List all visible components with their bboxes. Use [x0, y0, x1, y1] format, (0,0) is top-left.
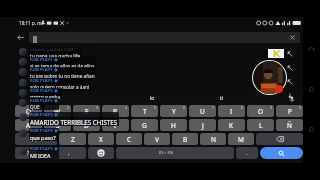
- staticText: MI IDEA: [30, 152, 51, 159]
- button[interactable]: Camera preview: [253, 61, 286, 94]
- button[interactable]: E: [73, 105, 100, 117]
- button[interactable]: usuario perdido 9348: [19, 47, 82, 60]
- button[interactable]: G: [131, 119, 158, 131]
- button[interactable]: Period: [236, 147, 258, 159]
- staticText: 7: [212, 105, 215, 110]
- button[interactable]: X: [88, 133, 114, 145]
- button[interactable]: J: [189, 119, 216, 131]
- button[interactable]: Voice input: [285, 92, 299, 105]
- staticText: 18:11 p. m.: [19, 20, 43, 26]
- button[interactable]: F: [102, 119, 129, 131]
- button[interactable]: ROB PLAYS: [19, 78, 91, 90]
- button[interactable]: B: [172, 133, 198, 145]
- button[interactable]: V: [144, 133, 170, 145]
- staticText: U: [200, 107, 205, 116]
- button[interactable]: O: [247, 105, 274, 117]
- staticText: H: [171, 121, 176, 130]
- staticText: Q: [26, 107, 32, 116]
- button[interactable]: T: [131, 105, 158, 117]
- button[interactable]: Comma: [51, 147, 86, 159]
- staticText: ti: [220, 95, 224, 102]
- staticText: 6: [183, 105, 186, 110]
- staticText: C: [127, 135, 132, 144]
- button[interactable]: ROB PLAYS: [19, 128, 59, 141]
- button[interactable]: D: [73, 119, 100, 131]
- button[interactable]: ROB PLAYS: [19, 112, 119, 126]
- button[interactable]: ROB PLAYS: [19, 88, 62, 100]
- button[interactable]: ROB PLAYS: [19, 146, 59, 159]
- staticText: ?123: [27, 150, 37, 156]
- button[interactable]: Backspace: [256, 133, 303, 145]
- button[interactable]: P: [276, 105, 303, 117]
- staticText: I: [230, 107, 233, 116]
- button[interactable]: Back: [13, 30, 27, 44]
- button[interactable]: M: [228, 133, 254, 145]
- button[interactable]: R: [102, 105, 129, 117]
- staticText: si es tema de ellos es de ellos: [30, 63, 95, 69]
- button[interactable]: Back: [305, 43, 318, 56]
- button[interactable]: ROB PLAYS: [19, 98, 59, 110]
- button[interactable]: Z: [59, 133, 86, 145]
- staticText: 4: [125, 105, 128, 110]
- button[interactable]: Expand: [284, 76, 296, 88]
- staticText: G: [142, 121, 147, 130]
- button[interactable]: Recents: [305, 123, 318, 136]
- staticText: •••••••• rumba: [30, 94, 61, 100]
- staticText: X: [99, 135, 103, 144]
- button[interactable]: U: [189, 105, 216, 117]
- button[interactable]: N: [200, 133, 226, 145]
- button[interactable]: Busca algo o pega un enlace: [29, 32, 300, 43]
- staticText: Y: [172, 107, 176, 116]
- staticText: B: [183, 135, 188, 144]
- staticText: solo quiero consolar a áani: [30, 84, 90, 90]
- staticText: Ñ: [287, 121, 292, 130]
- staticText: 1: [38, 105, 41, 110]
- button[interactable]: I: [218, 105, 245, 117]
- staticText: E: [85, 107, 89, 116]
- button[interactable]: K: [218, 119, 245, 131]
- staticText: M: [238, 135, 244, 144]
- button[interactable]: Ñ: [276, 119, 303, 131]
- staticText: 8: [241, 105, 244, 110]
- button[interactable]: Download: [284, 90, 296, 102]
- staticText: que paso?: [30, 134, 56, 141]
- staticText: T: [143, 107, 147, 116]
- button[interactable]: S: [44, 119, 71, 131]
- staticText: O: [258, 107, 264, 116]
- button[interactable]: ES • EN: [116, 147, 234, 159]
- staticText: W: [54, 107, 61, 116]
- button[interactable]: Home: [305, 83, 318, 96]
- staticText: .: [246, 149, 248, 157]
- button[interactable]: C: [116, 133, 142, 145]
- staticText: 5: [154, 105, 157, 110]
- button[interactable]: W: [44, 105, 71, 117]
- button[interactable]: Expand: [284, 48, 296, 60]
- staticText: ROB PLAYS: [30, 112, 53, 118]
- button[interactable]: Emoji: [88, 147, 114, 159]
- staticText: R: [113, 107, 118, 116]
- button[interactable]: H: [160, 119, 187, 131]
- button[interactable]: Q: [15, 105, 42, 117]
- button[interactable]: L: [247, 119, 274, 131]
- button[interactable]: Clear: [288, 33, 297, 42]
- staticText: S: [56, 121, 60, 130]
- staticText: lo: [150, 95, 155, 102]
- button[interactable]: ROB PLAYS: [19, 57, 96, 69]
- staticText: ROB PLAYS: [30, 128, 53, 134]
- staticText: ROB PLAYS: [30, 88, 53, 94]
- button[interactable]: Symbols: [15, 147, 49, 159]
- button[interactable]: ROB PLAYS: [19, 67, 96, 79]
- staticText: 3: [96, 105, 99, 110]
- button[interactable]: Y: [160, 105, 187, 117]
- staticText: ROB PLAYS: [30, 57, 53, 63]
- button[interactable]: Expand: [284, 62, 296, 74]
- button[interactable]: Shift: [15, 133, 57, 145]
- staticText: L: [259, 121, 263, 130]
- staticText: J: [202, 121, 204, 130]
- button[interactable]: Search: [260, 147, 303, 159]
- button[interactable]: A: [15, 119, 42, 131]
- staticText: D: [84, 121, 89, 130]
- staticText: ,: [68, 149, 70, 157]
- staticText: 0: [299, 105, 302, 110]
- staticText: tu ere pobre tu no tiene añan: [30, 73, 95, 79]
